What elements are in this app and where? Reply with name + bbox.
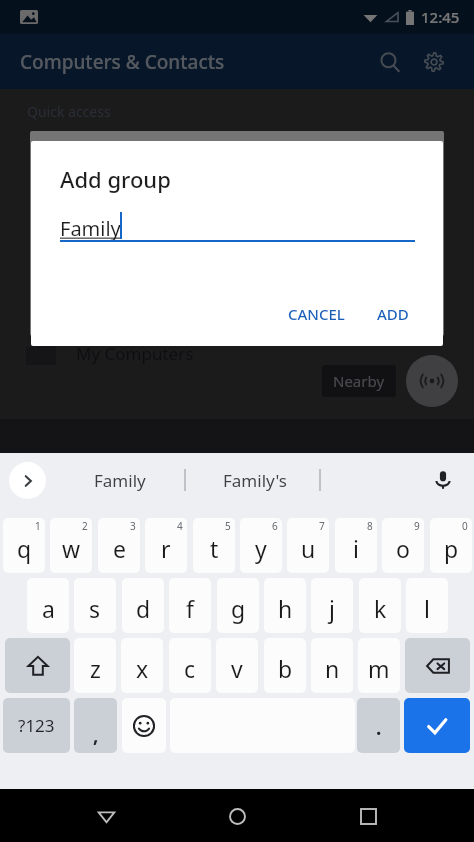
staticText: , [93, 722, 99, 748]
button[interactable]: Nearby devices [406, 355, 458, 407]
staticText: w [62, 533, 81, 564]
staticText: 4 [177, 519, 183, 533]
button[interactable]: t [193, 518, 235, 573]
staticText: CANCEL [288, 304, 345, 324]
staticText: u [301, 533, 316, 564]
button[interactable]: ?123 [3, 698, 70, 753]
button[interactable]: Family [60, 453, 180, 507]
staticText: e [113, 533, 126, 564]
button[interactable]: , [74, 698, 117, 753]
button[interactable]: r [145, 518, 187, 573]
staticText: v [231, 653, 243, 684]
button[interactable]: z [74, 638, 116, 693]
staticText: z [90, 653, 101, 684]
button[interactable]: d [122, 578, 164, 633]
button[interactable]: n [311, 638, 353, 693]
staticText: y [255, 533, 267, 564]
staticText: Family's [223, 469, 287, 492]
staticText: b [278, 653, 293, 684]
staticText: g [231, 593, 246, 624]
staticText: 1 [35, 519, 41, 533]
button[interactable]: Emoji [122, 698, 166, 753]
button[interactable]: l [406, 578, 448, 633]
button[interactable]: Recent apps [344, 792, 392, 840]
button[interactable]: m [358, 638, 400, 693]
button[interactable]: f [169, 578, 211, 633]
button[interactable]: c [169, 638, 211, 693]
button[interactable]: v [216, 638, 258, 693]
button[interactable]: h [264, 578, 306, 633]
staticText: Nearby [333, 371, 385, 391]
button[interactable]: u [287, 518, 329, 573]
button[interactable]: ADD [369, 296, 417, 332]
staticText: t [210, 533, 219, 564]
button[interactable]: e [98, 518, 140, 573]
staticText: ADD [377, 304, 409, 324]
staticText: Add group [60, 164, 171, 194]
staticText: i [353, 533, 359, 564]
staticText: j [329, 593, 335, 624]
button[interactable]: Enter [404, 698, 470, 753]
staticText: 5 [225, 519, 231, 533]
staticText: p [444, 533, 459, 564]
staticText: . [376, 715, 382, 741]
button[interactable]: Shift [5, 638, 70, 693]
staticText: 8 [367, 519, 373, 533]
button[interactable]: i [335, 518, 377, 573]
staticText: ?123 [18, 714, 55, 737]
button[interactable]: Voice input [420, 457, 466, 503]
staticText: q [17, 533, 32, 564]
staticText: Quick access [27, 102, 111, 121]
staticText: o [396, 533, 410, 564]
button[interactable]: g [217, 578, 259, 633]
staticText: 0 [462, 519, 468, 533]
button[interactable]: Settings [412, 40, 456, 84]
staticText: n [325, 653, 340, 684]
staticText: c [184, 653, 196, 684]
button[interactable]: Search [368, 40, 412, 84]
button[interactable]: a [27, 578, 69, 633]
button[interactable]: Home [213, 792, 261, 840]
button[interactable]: Back [82, 792, 130, 840]
button[interactable]: x [121, 638, 163, 693]
staticText: My Computers [76, 342, 194, 365]
button[interactable]: w [50, 518, 92, 573]
staticText: l [424, 593, 430, 624]
staticText: 9 [414, 519, 420, 533]
staticText: Computers & Contacts [20, 49, 225, 75]
staticText: 2 [82, 519, 88, 533]
staticText: x [136, 653, 149, 684]
staticText: Family [94, 469, 146, 492]
staticText: 7 [319, 519, 325, 533]
staticText: a [42, 593, 55, 624]
button[interactable]: k [359, 578, 401, 633]
button[interactable]: j [311, 578, 353, 633]
button[interactable]: s [74, 578, 116, 633]
staticText: Family [60, 215, 121, 242]
button[interactable]: Backspace [405, 638, 470, 693]
staticText: 12:45 [421, 7, 460, 27]
button[interactable]: y [240, 518, 282, 573]
staticText: h [278, 593, 293, 624]
button[interactable]: q [3, 518, 45, 573]
button[interactable]: p [430, 518, 472, 573]
staticText: 6 [272, 519, 278, 533]
staticText: d [136, 593, 151, 624]
button[interactable]: Family's [192, 453, 318, 507]
button[interactable]: CANCEL [280, 296, 353, 332]
staticText: m [368, 653, 390, 684]
staticText: f [186, 593, 194, 624]
staticText: 3 [130, 519, 136, 533]
staticText: s [89, 593, 101, 624]
button[interactable]: . [357, 698, 400, 753]
staticText: r [161, 533, 171, 564]
staticText: k [374, 593, 387, 624]
button[interactable]: o [382, 518, 424, 573]
button[interactable]: b [264, 638, 306, 693]
button[interactable]: More suggestions [9, 462, 46, 499]
